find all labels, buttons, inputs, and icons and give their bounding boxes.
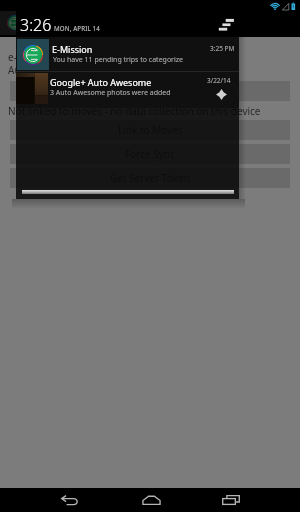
staticText: Auto-detect trips xyxy=(8,63,87,77)
button[interactable]: Quick settings xyxy=(216,16,236,36)
staticText: E-Mission xyxy=(52,43,93,55)
button[interactable]: Home xyxy=(120,488,182,512)
staticText: Google+ Auto Awesome xyxy=(50,76,152,88)
staticText: Not linked to moves - no data collection… xyxy=(8,104,261,118)
button[interactable]: Get Server Token xyxy=(10,168,290,188)
staticText: 3:25 PM xyxy=(210,44,235,53)
button[interactable]: Google+ Auto Awesome xyxy=(16,72,239,108)
staticText: 3/22/14 xyxy=(207,76,231,85)
button[interactable]: Back xyxy=(38,488,100,512)
button[interactable] xyxy=(10,81,290,101)
staticText: e-mission xyxy=(8,50,54,64)
staticText: 3:26 xyxy=(20,14,52,36)
button[interactable]: E-Mission xyxy=(16,37,239,71)
staticText: You have 11 pending trips to categorize xyxy=(53,55,184,65)
staticText: 3 Auto Awesome photos were added xyxy=(50,88,171,98)
staticText: MON, APRIL 14 xyxy=(54,24,100,32)
button[interactable]: Recent apps xyxy=(200,488,262,512)
button[interactable]: Link to Moves xyxy=(10,120,290,140)
button[interactable]: Force Sync xyxy=(10,144,290,164)
